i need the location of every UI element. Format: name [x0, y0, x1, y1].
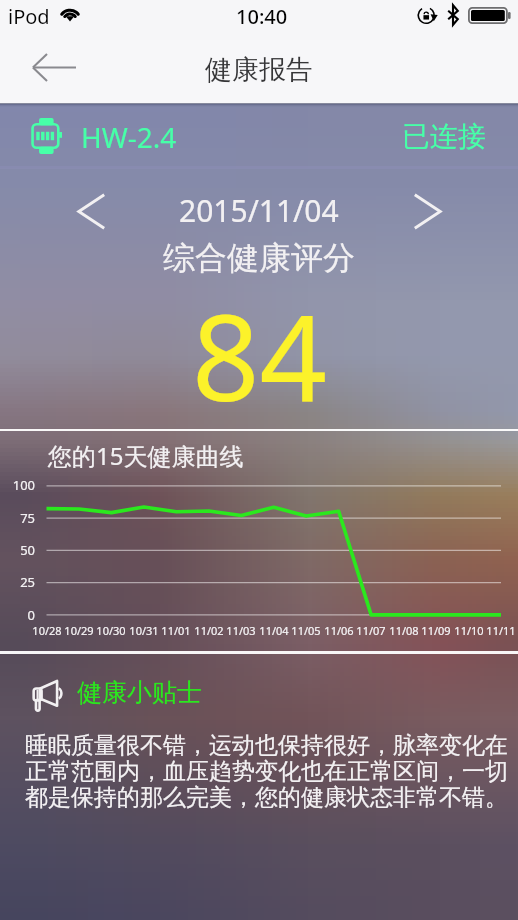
staticText: 健康报告	[205, 53, 313, 87]
staticText: 50	[0, 541, 35, 559]
button[interactable]: Back	[20, 36, 89, 98]
staticText: 0	[0, 606, 35, 624]
staticText: 11/07	[351, 623, 391, 638]
button[interactable]: 健康小贴士	[20, 667, 204, 725]
staticText: 11/03	[221, 623, 261, 638]
staticText: 综合健康评分	[163, 238, 355, 278]
staticText: 您的15天健康曲线	[48, 439, 244, 472]
staticText: HW-2.4	[81, 118, 177, 156]
staticText: 10/28	[27, 623, 67, 638]
staticText: 11/10	[449, 623, 489, 638]
staticText: 11/08	[384, 623, 424, 638]
staticText: 25	[0, 573, 35, 591]
staticText: 11/05	[286, 623, 326, 638]
staticText: 10/30	[91, 623, 131, 638]
staticText: 11/06	[319, 623, 359, 638]
staticText: 11/01	[156, 623, 196, 638]
button[interactable]: HW-2.4	[0, 107, 518, 165]
staticText: 健康小贴士	[77, 677, 202, 708]
staticText: 11/11	[481, 623, 518, 638]
staticText: 84	[192, 275, 327, 436]
staticText: 睡眠质量很不错，运动也保持很好，脉率变化在正常范围内，血压趋势变化也在正常区间，…	[25, 731, 515, 812]
button[interactable]: Next day	[399, 183, 455, 239]
staticText: 10/31	[124, 623, 164, 638]
button[interactable]: Previous day	[63, 183, 119, 239]
staticText: 已连接	[402, 119, 486, 154]
staticText: 2015/11/04	[179, 190, 339, 231]
staticText: 100	[0, 476, 35, 494]
staticText: 10/29	[59, 623, 99, 638]
staticText: iPod	[8, 3, 50, 30]
staticText: 11/09	[416, 623, 456, 638]
staticText: 10:40	[236, 3, 288, 30]
staticText: 11/02	[189, 623, 229, 638]
staticText: 75	[0, 509, 35, 527]
staticText: 11/04	[254, 623, 294, 638]
